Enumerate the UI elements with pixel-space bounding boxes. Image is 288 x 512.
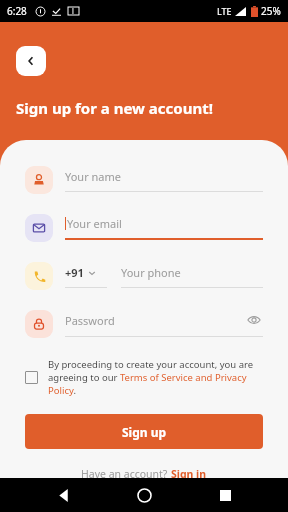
button[interactable]: Sign up <box>25 414 263 449</box>
staticText: Your phone <box>121 265 181 280</box>
staticText: Password <box>65 313 245 328</box>
button[interactable]: Back <box>16 46 46 76</box>
button[interactable]: Recent apps <box>208 478 242 512</box>
staticText: Your name <box>65 169 263 184</box>
button[interactable]: +91 <box>65 265 107 280</box>
staticText: Sign up for a new account! <box>16 98 213 118</box>
staticText: Your email <box>67 216 263 231</box>
staticText: LTE <box>217 5 232 17</box>
button[interactable]: Sign in <box>171 467 207 478</box>
button[interactable]: By proceeding to create your account, yo… <box>25 358 263 397</box>
button[interactable]: Show password <box>245 311 263 329</box>
button[interactable]: Back <box>47 478 81 512</box>
staticText: Sign up <box>122 424 167 440</box>
button[interactable]: Home <box>127 478 161 512</box>
staticText: +91 <box>65 265 84 280</box>
staticText: By proceeding to create your account, yo… <box>48 358 263 397</box>
staticText: Have an account? <box>81 467 171 478</box>
staticText: 25% <box>261 4 281 18</box>
staticText: Sign in <box>171 467 207 478</box>
staticText: 6:28 <box>7 4 27 18</box>
